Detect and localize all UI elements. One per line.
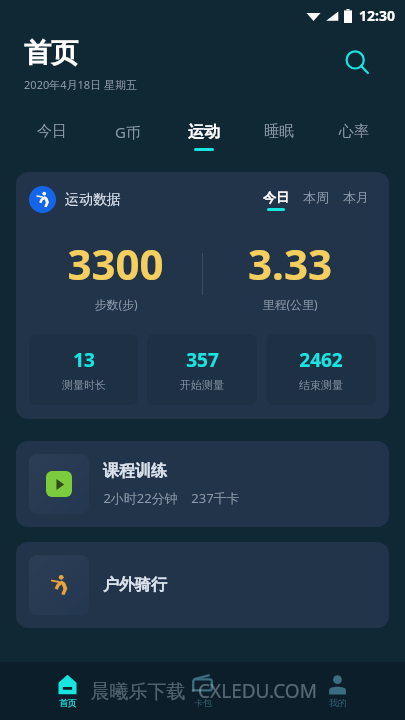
button[interactable]: 运动: [166, 110, 241, 162]
staticText: 测量时长: [62, 378, 106, 392]
button[interactable]: 户外骑行: [16, 542, 389, 628]
button[interactable]: 2462: [266, 334, 376, 405]
staticText: 357: [186, 347, 219, 373]
button[interactable]: 运动数据: [16, 172, 389, 419]
staticText: 2020年4月18日 星期五: [24, 77, 137, 92]
staticText: 今日: [37, 122, 67, 141]
staticText: 晨曦乐下载 ·: [88, 678, 198, 704]
staticText: 3300: [67, 235, 164, 292]
staticText: 结束测量: [299, 378, 343, 392]
staticText: 运动: [188, 122, 220, 142]
staticText: 今日: [263, 189, 289, 205]
button[interactable]: 今日: [14, 110, 90, 162]
button[interactable]: 课程训练: [16, 441, 389, 527]
button[interactable]: 睡眠: [241, 110, 316, 162]
staticText: 3.33: [248, 235, 332, 292]
staticText: 课程训练: [103, 461, 167, 481]
staticText: 睡眠: [264, 122, 294, 141]
staticText: 卡包: [194, 697, 212, 708]
button[interactable]: 本周: [296, 189, 336, 211]
staticText: 开始测量: [180, 378, 224, 392]
staticText: 首页: [24, 36, 78, 70]
button[interactable]: 卡包: [135, 662, 270, 720]
button[interactable]: 357: [147, 334, 257, 405]
button[interactable]: 我的: [270, 662, 405, 720]
staticText: G币: [115, 122, 141, 142]
staticText: 心率: [339, 122, 369, 141]
button[interactable]: 搜索: [335, 40, 379, 84]
staticText: 步数(步): [94, 296, 138, 312]
button[interactable]: 本月: [336, 189, 376, 211]
staticText: 运动数据: [65, 191, 121, 209]
staticText: 我的: [329, 697, 347, 708]
button[interactable]: 13: [29, 334, 138, 405]
staticText: 本周: [303, 189, 329, 205]
button[interactable]: 心率: [316, 110, 391, 162]
staticText: 13: [73, 347, 95, 373]
staticText: 2小时22分钟 237千卡: [103, 489, 240, 507]
button[interactable]: 首页: [0, 662, 135, 720]
staticText: 12:30: [359, 6, 395, 25]
staticText: 首页: [59, 697, 77, 708]
staticText: CXLEDU.COM: [198, 678, 317, 704]
staticText: 本月: [343, 189, 369, 205]
button[interactable]: 今日: [256, 189, 296, 211]
button[interactable]: G币: [90, 110, 166, 162]
staticText: 2462: [299, 347, 343, 373]
staticText: 户外骑行: [103, 575, 167, 595]
staticText: 里程(公里): [262, 296, 318, 312]
